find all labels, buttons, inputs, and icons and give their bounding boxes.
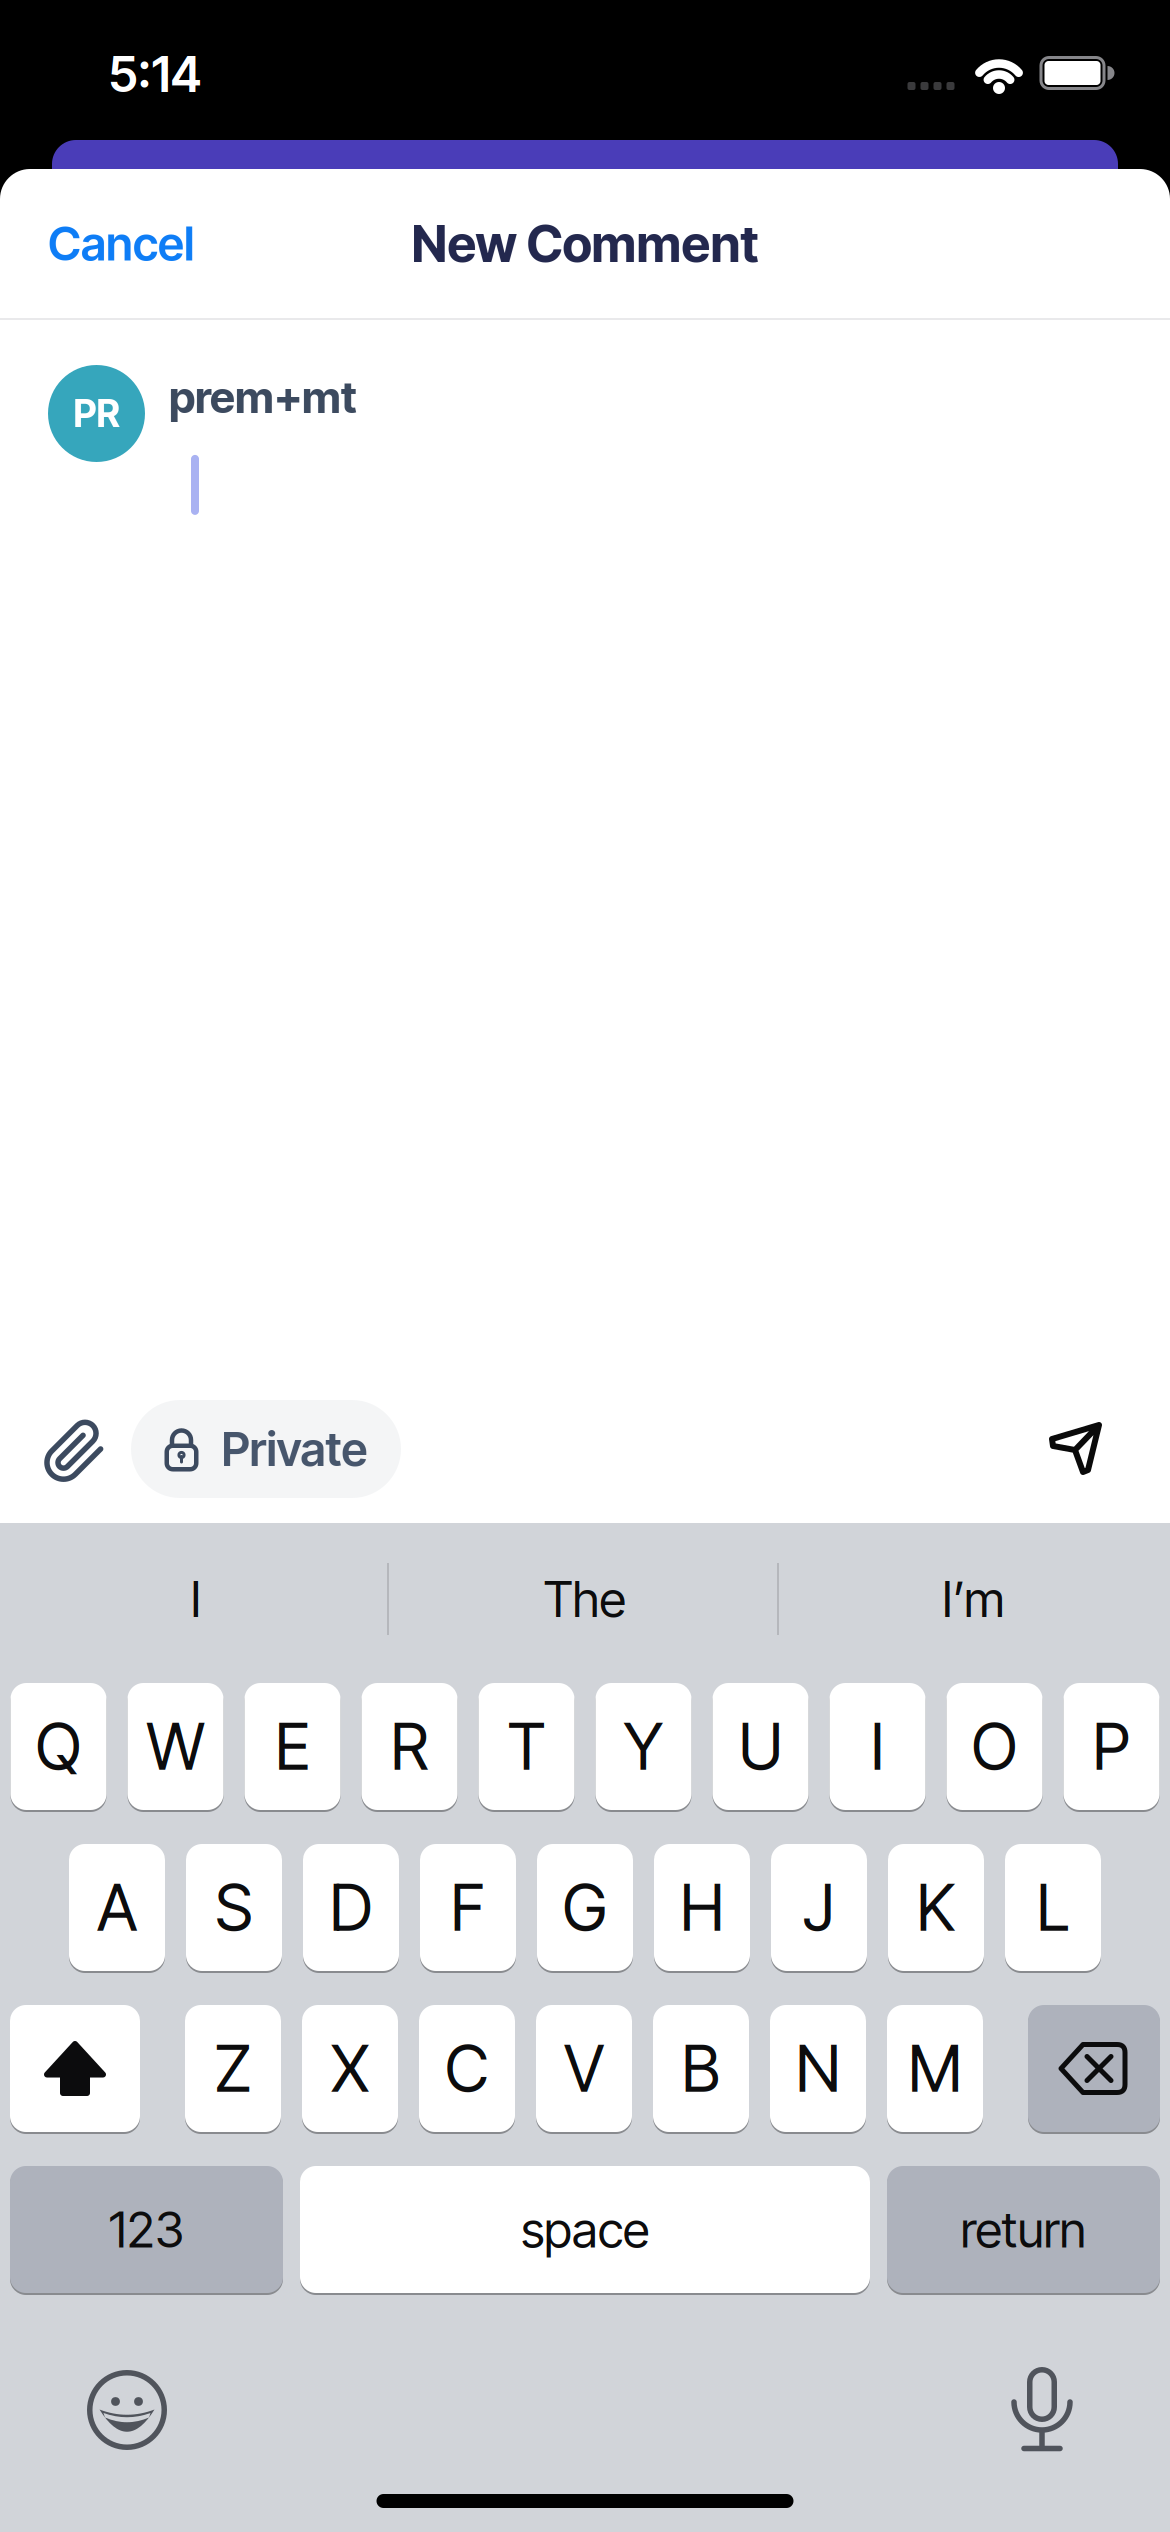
- staticText: E: [275, 1709, 310, 1784]
- staticText: I: [190, 1570, 201, 1628]
- staticText: 5:14: [108, 45, 201, 103]
- staticText: K: [916, 1870, 955, 1945]
- button[interactable]: P: [1063, 1683, 1159, 1810]
- button[interactable]: G: [537, 1844, 633, 1971]
- staticText: R: [390, 1709, 428, 1784]
- staticText: C: [445, 2031, 489, 2106]
- button[interactable]: Attach file: [50, 1424, 104, 1474]
- button[interactable]: C: [419, 2005, 515, 2132]
- button[interactable]: U: [712, 1683, 808, 1810]
- staticText: Y: [623, 1709, 663, 1784]
- staticText: P: [1092, 1709, 1130, 1784]
- staticText: Private: [221, 1421, 367, 1477]
- staticText: G: [562, 1870, 607, 1945]
- staticText: L: [1036, 1870, 1069, 1945]
- staticText: Z: [214, 2031, 251, 2106]
- button[interactable]: Emoji: [87, 2370, 167, 2450]
- staticText: M: [908, 2031, 962, 2106]
- button[interactable]: N: [770, 2005, 866, 2132]
- button[interactable]: I: [829, 1683, 925, 1810]
- staticText: 123: [109, 2200, 184, 2259]
- staticText: space: [521, 2200, 649, 2259]
- button[interactable]: F: [420, 1844, 516, 1971]
- button[interactable]: Cancel: [48, 216, 194, 271]
- button[interactable]: T: [478, 1683, 574, 1810]
- staticText: V: [564, 2031, 604, 2106]
- button[interactable]: M: [887, 2005, 983, 2132]
- staticText: W: [146, 1709, 204, 1784]
- staticText: B: [681, 2031, 720, 2106]
- staticText: F: [450, 1870, 485, 1945]
- button[interactable]: Z: [185, 2005, 281, 2132]
- button[interactable]: R: [361, 1683, 457, 1810]
- staticText: U: [738, 1709, 782, 1784]
- staticText: prem+mt: [169, 371, 357, 423]
- staticText: S: [215, 1870, 253, 1945]
- button[interactable]: Send: [1050, 1423, 1102, 1475]
- button[interactable]: space: [300, 2166, 870, 2293]
- button[interactable]: Delete: [1028, 2005, 1160, 2132]
- button[interactable]: Dictation: [1013, 2367, 1071, 2453]
- button[interactable]: J: [771, 1844, 867, 1971]
- button[interactable]: Y: [595, 1683, 691, 1810]
- staticText: D: [329, 1870, 372, 1945]
- staticText: I: [870, 1709, 884, 1784]
- staticText: return: [960, 2200, 1086, 2259]
- staticText: I’m: [942, 1570, 1005, 1628]
- staticText: X: [331, 2031, 369, 2106]
- button[interactable]: L: [1005, 1844, 1101, 1971]
- button[interactable]: S: [186, 1844, 282, 1971]
- button[interactable]: 123: [10, 2166, 283, 2293]
- button[interactable]: The: [390, 1519, 779, 1679]
- button[interactable]: O: [946, 1683, 1042, 1810]
- button[interactable]: Shift: [10, 2005, 140, 2132]
- button[interactable]: Q: [10, 1683, 106, 1810]
- staticText: T: [507, 1709, 545, 1784]
- button[interactable]: B: [653, 2005, 749, 2132]
- button[interactable]: X: [302, 2005, 398, 2132]
- button[interactable]: W: [127, 1683, 223, 1810]
- button[interactable]: K: [888, 1844, 984, 1971]
- staticText: Q: [35, 1709, 81, 1784]
- staticText: The: [543, 1570, 625, 1628]
- button[interactable]: return: [887, 2166, 1160, 2293]
- button[interactable]: E: [244, 1683, 340, 1810]
- staticText: N: [795, 2031, 840, 2106]
- button[interactable]: H: [654, 1844, 750, 1971]
- button[interactable]: D: [303, 1844, 399, 1971]
- button[interactable]: I’m: [779, 1519, 1168, 1679]
- staticText: O: [971, 1709, 1017, 1784]
- staticText: PR: [73, 391, 119, 435]
- button[interactable]: Private: [131, 1400, 401, 1498]
- staticText: A: [97, 1870, 137, 1945]
- staticText: New Comment: [411, 214, 758, 273]
- button[interactable]: V: [536, 2005, 632, 2132]
- staticText: H: [680, 1870, 724, 1945]
- staticText: Cancel: [48, 216, 194, 271]
- button[interactable]: I: [2, 1519, 390, 1679]
- staticText: J: [803, 1870, 835, 1945]
- button[interactable]: A: [69, 1844, 165, 1971]
